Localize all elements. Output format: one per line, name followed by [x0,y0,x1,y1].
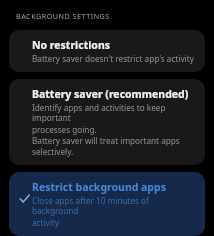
staticText: selectively. [32,146,74,157]
staticText: Close apps after 10 minutes of backgroun… [32,195,195,217]
staticText: Battery saver will treat important apps [32,135,180,146]
button[interactable]: No restrictions [9,30,205,72]
staticText: Battery saver doesn't restrict app's act… [32,53,194,64]
staticText: Identify apps and activities to keep imp… [32,102,195,124]
other: Selected [18,192,31,205]
staticText: BACKGROUND SETTINGS [16,11,110,21]
staticText: processes going. [32,124,97,135]
staticText: Battery saver (recommended) [32,87,189,101]
button[interactable]: Selected [9,172,205,236]
staticText: Restrict background apps [32,180,166,194]
button[interactable]: Battery saver (recommended) [9,79,205,165]
staticText: No restrictions [32,38,111,52]
staticText: activity [32,217,59,228]
